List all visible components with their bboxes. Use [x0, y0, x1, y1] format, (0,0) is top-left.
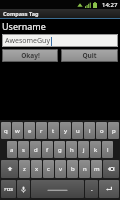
button[interactable]: Voice input: [17, 180, 30, 198]
button[interactable]: b: [67, 160, 78, 178]
button[interactable]: l: [102, 141, 113, 158]
button[interactable]: Symbols: [1, 180, 16, 198]
staticText: .: [91, 185, 93, 193]
staticText: y: [64, 127, 68, 135]
staticText: Quit: [82, 51, 97, 60]
staticText: i: [89, 127, 91, 135]
staticText: t: [52, 127, 55, 135]
button[interactable]: w: [12, 122, 23, 139]
button[interactable]: Shift: [1, 160, 18, 178]
staticText: w: [15, 127, 20, 135]
staticText: Okay!: [21, 51, 40, 60]
button[interactable]: Enter: [99, 180, 119, 198]
button[interactable]: r: [36, 122, 47, 139]
staticText: z: [23, 165, 26, 173]
button[interactable]: Quit: [61, 49, 118, 62]
staticText: Username: [2, 20, 46, 32]
staticText: e: [28, 127, 32, 135]
button[interactable]: c: [43, 160, 54, 178]
button[interactable]: f: [42, 141, 53, 158]
staticText: h: [70, 146, 74, 154]
staticText: r: [40, 127, 43, 135]
button[interactable]: s: [18, 141, 29, 158]
button[interactable]: d: [30, 141, 41, 158]
button[interactable]: e: [24, 122, 35, 139]
button[interactable]: n: [79, 160, 90, 178]
staticText: q: [4, 127, 8, 135]
button[interactable]: q: [1, 122, 11, 139]
staticText: d: [34, 146, 38, 154]
button[interactable]: Space: [31, 180, 84, 198]
staticText: 14:27: [102, 1, 118, 9]
staticText: ?123: [4, 187, 13, 192]
staticText: n: [83, 165, 87, 173]
button[interactable]: z: [19, 160, 30, 178]
button[interactable]: p: [108, 122, 119, 139]
button[interactable]: t: [48, 122, 59, 139]
button[interactable]: y: [60, 122, 71, 139]
button[interactable]: g: [54, 141, 65, 158]
button[interactable]: u: [72, 122, 83, 139]
staticText: v: [59, 165, 63, 173]
staticText: Compass Tag: [3, 10, 39, 17]
staticText: g: [58, 146, 62, 154]
button[interactable]: Okay!: [2, 49, 58, 62]
button[interactable]: k: [90, 141, 101, 158]
button[interactable]: j: [78, 141, 89, 158]
staticText: f: [46, 146, 49, 154]
staticText: p: [112, 127, 116, 135]
staticText: u: [76, 127, 80, 135]
staticText: j: [83, 146, 85, 154]
staticText: m: [94, 165, 100, 173]
staticText: o: [100, 127, 104, 135]
button[interactable]: Period: [85, 180, 98, 198]
button[interactable]: m: [91, 160, 102, 178]
button[interactable]: x: [31, 160, 42, 178]
staticText: a: [10, 146, 14, 154]
staticText: c: [47, 165, 50, 173]
button[interactable]: a: [7, 141, 17, 158]
staticText: k: [94, 146, 98, 154]
staticText: b: [71, 165, 75, 173]
button[interactable]: i: [84, 122, 95, 139]
staticText: x: [35, 165, 39, 173]
button[interactable]: v: [55, 160, 66, 178]
staticText: s: [22, 146, 25, 154]
staticText: l: [107, 146, 109, 154]
button[interactable]: Backspace: [103, 160, 119, 178]
staticText: AwesomeGuy: [5, 36, 50, 46]
button[interactable]: o: [96, 122, 107, 139]
button[interactable]: AwesomeGuy: [2, 34, 118, 47]
button[interactable]: h: [66, 141, 77, 158]
